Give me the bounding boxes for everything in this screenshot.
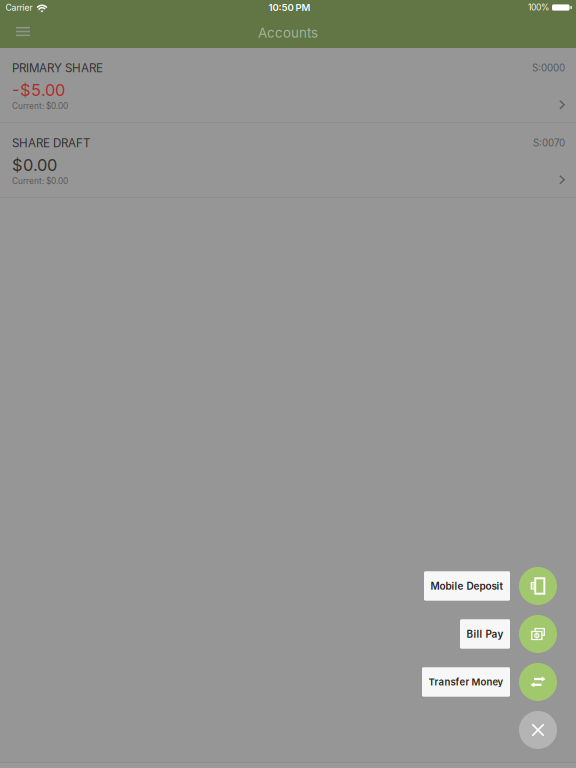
staticText: Carrier xyxy=(5,2,32,13)
button[interactable]: SHARE DRAFT xyxy=(0,123,576,198)
button[interactable]: Bill Pay xyxy=(460,619,510,649)
staticText: $0.00 xyxy=(12,155,57,175)
staticText: S:0000 xyxy=(532,62,565,74)
button[interactable]: Menu xyxy=(8,16,38,46)
staticText: 100% xyxy=(528,2,549,13)
staticText: Accounts xyxy=(258,25,318,41)
staticText: -$5.00 xyxy=(12,80,65,100)
button[interactable]: Transfer Money xyxy=(422,667,510,697)
staticText: Bill Pay xyxy=(466,628,503,640)
staticText: Transfer Money xyxy=(428,676,503,688)
button[interactable]: Mobile Deposit xyxy=(424,571,510,601)
button[interactable]: Close menu xyxy=(519,711,557,749)
staticText: S:0070 xyxy=(533,137,565,149)
staticText: Mobile Deposit xyxy=(430,580,503,592)
staticText: PRIMARY SHARE xyxy=(12,61,103,75)
button[interactable]: Mobile Deposit xyxy=(519,567,557,605)
staticText: Current: $0.00 xyxy=(12,101,68,111)
button[interactable]: Transfer Money xyxy=(519,663,557,701)
staticText: Current: $0.00 xyxy=(12,176,68,186)
staticText: SHARE DRAFT xyxy=(12,136,90,150)
staticText: 10:50 PM xyxy=(268,2,310,13)
button[interactable]: Bill Pay xyxy=(519,615,557,653)
button[interactable]: PRIMARY SHARE xyxy=(0,48,576,123)
